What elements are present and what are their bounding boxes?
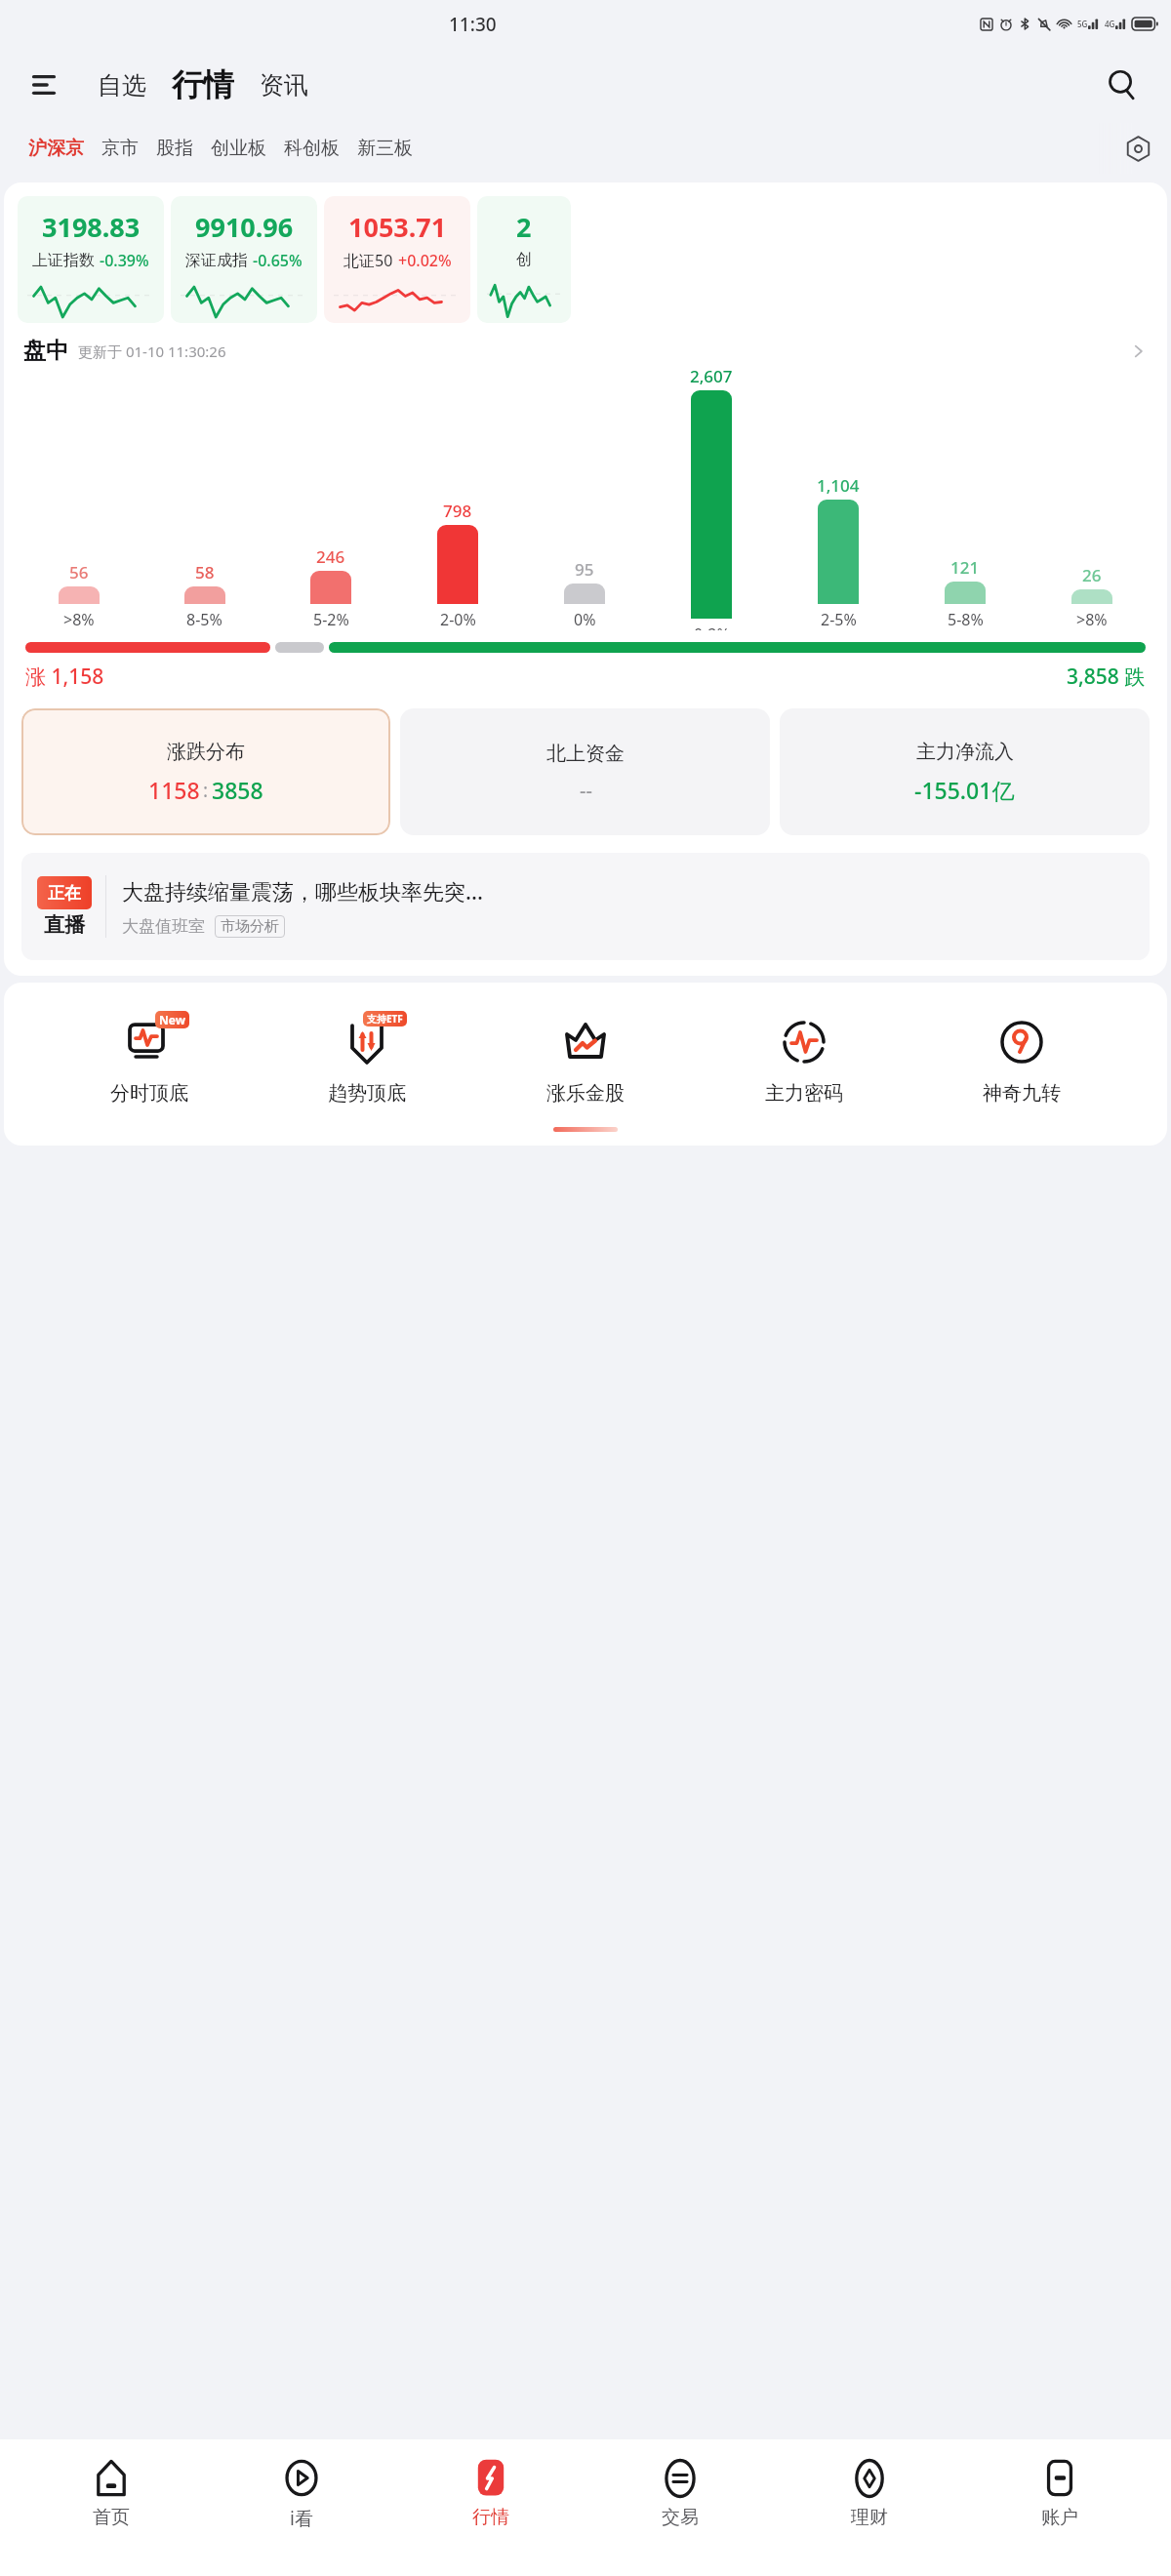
button[interactable]: 盘中 <box>23 337 1148 365</box>
staticText: 涨 1,158 <box>25 663 104 691</box>
staticText: -- <box>580 777 592 803</box>
button[interactable]: 1053.71 <box>324 196 470 323</box>
staticText: 支持ETF <box>367 1012 403 1026</box>
staticText: 创业板 <box>211 137 266 160</box>
button[interactable]: 行情 <box>166 63 240 106</box>
staticText: 北上资金 <box>546 742 625 766</box>
staticText: 新三板 <box>357 137 413 160</box>
staticText: 涨跌分布 <box>167 740 245 764</box>
staticText: 5G <box>1077 19 1088 29</box>
button[interactable] <box>945 582 986 604</box>
staticText: 上证指数 <box>32 251 95 270</box>
staticText: 趋势顶底 <box>328 1081 406 1106</box>
button[interactable]: 主力净流入 <box>780 708 1150 835</box>
staticText: 主力密码 <box>765 1081 843 1106</box>
button[interactable]: Search <box>1099 61 1146 108</box>
staticText: 自选 <box>98 70 146 101</box>
button[interactable] <box>310 571 351 604</box>
button[interactable]: New <box>76 1012 222 1106</box>
staticText: >8% <box>1076 609 1108 630</box>
button[interactable]: 2 <box>477 196 571 323</box>
button[interactable]: 自选 <box>90 64 154 106</box>
button[interactable]: 账户 <box>982 2457 1138 2529</box>
staticText: +0.02% <box>398 250 452 271</box>
staticText: 沪深京 <box>28 137 84 160</box>
button[interactable]: 股指 <box>147 131 202 166</box>
staticText: 5-2% <box>313 609 349 630</box>
button[interactable]: 涨乐金股 <box>512 1012 659 1106</box>
staticText: 深证成指 <box>185 251 248 270</box>
staticText: 京市 <box>101 137 139 160</box>
staticText: 大盘值班室 <box>122 916 205 937</box>
staticText: i看 <box>290 2506 313 2531</box>
staticText: 0% <box>574 609 596 630</box>
button[interactable]: 交易 <box>602 2457 758 2529</box>
staticText: 市场分析 <box>221 917 279 936</box>
staticText: 5-8% <box>948 609 984 630</box>
staticText: 创 <box>516 250 532 269</box>
staticText: 2,607 <box>690 365 733 387</box>
staticText: 95 <box>575 558 594 581</box>
staticText: 3198.83 <box>42 209 141 245</box>
button[interactable]: 支持ETF <box>294 1012 440 1106</box>
button[interactable]: 创业板 <box>202 131 275 166</box>
staticText: 2-5% <box>821 609 857 630</box>
staticText: 涨乐金股 <box>546 1081 625 1106</box>
button[interactable] <box>691 390 732 619</box>
button[interactable] <box>1071 589 1112 604</box>
button[interactable]: 首页 <box>33 2457 189 2529</box>
staticText: >8% <box>63 609 95 630</box>
button[interactable]: 科创板 <box>275 131 348 166</box>
staticText: -0.39% <box>100 250 149 271</box>
button[interactable]: 京市 <box>93 131 147 166</box>
button[interactable]: 北上资金 <box>400 708 770 835</box>
button[interactable] <box>818 500 859 604</box>
button[interactable]: Menu <box>21 62 66 107</box>
staticText: 主力净流入 <box>916 740 1014 764</box>
button[interactable]: 涨跌分布 <box>21 708 390 835</box>
button[interactable]: 新三板 <box>348 131 422 166</box>
staticText: 直播 <box>44 912 85 938</box>
staticText: 58 <box>195 561 215 584</box>
staticText: 4G <box>1105 19 1115 29</box>
staticText: 9910.96 <box>195 209 294 245</box>
staticText: 3858 <box>212 775 263 805</box>
button[interactable]: 沪深京 <box>20 131 93 166</box>
button[interactable] <box>564 584 605 604</box>
staticText: 行情 <box>472 2506 509 2529</box>
button[interactable] <box>59 586 100 604</box>
staticText: 更新于 01-10 11:30:26 <box>78 342 226 361</box>
button[interactable]: 神奇九转 <box>949 1012 1095 1106</box>
staticText: 11:30 <box>449 12 497 37</box>
button[interactable]: i看 <box>223 2457 380 2531</box>
staticText: 交易 <box>662 2506 699 2529</box>
staticText: 正在 <box>48 883 81 904</box>
staticText: 盘中 <box>23 337 68 365</box>
staticText: 行情 <box>172 65 234 104</box>
staticText: 理财 <box>851 2506 888 2529</box>
button[interactable]: 3198.83 <box>18 196 164 323</box>
button[interactable]: 9910.96 <box>171 196 317 323</box>
staticText: 26 <box>1082 564 1102 586</box>
staticText: 北证50 <box>343 250 393 271</box>
button[interactable]: Settings <box>1118 129 1157 168</box>
button[interactable]: 行情 <box>413 2457 569 2529</box>
staticText: 大盘持续缩量震荡，哪些板块率先突... <box>122 876 483 906</box>
staticText: New <box>159 1012 185 1027</box>
staticText: 首页 <box>93 2506 130 2529</box>
staticText: -155.01亿 <box>914 775 1015 805</box>
button[interactable]: 资讯 <box>252 64 316 106</box>
staticText: 2 <box>516 209 532 245</box>
button[interactable]: 主力密码 <box>731 1012 877 1106</box>
staticText: 2-0% <box>440 609 476 630</box>
button[interactable]: 正在 <box>21 853 1150 960</box>
button[interactable] <box>437 525 478 604</box>
staticText: 资讯 <box>260 70 308 101</box>
button[interactable] <box>184 586 225 604</box>
staticText: 798 <box>443 500 472 522</box>
staticText: 8-5% <box>186 609 222 630</box>
staticText: 账户 <box>1041 2506 1078 2529</box>
button[interactable]: 理财 <box>791 2457 948 2529</box>
staticText: -0.65% <box>253 250 303 271</box>
staticText: 科创板 <box>284 137 340 160</box>
